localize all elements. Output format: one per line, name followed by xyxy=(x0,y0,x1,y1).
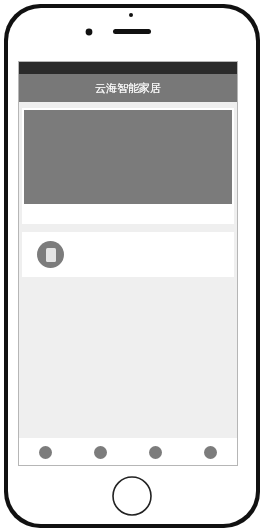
button[interactable]: Profile xyxy=(183,438,238,466)
other: Device xyxy=(37,241,64,268)
staticText: 云海智能家居 xyxy=(95,81,161,95)
button[interactable]: Device xyxy=(22,232,234,277)
button[interactable] xyxy=(22,108,234,224)
button[interactable]: Devices xyxy=(73,438,128,466)
button[interactable]: 云海智能家居 xyxy=(18,74,238,102)
button[interactable]: Scenes xyxy=(128,438,183,466)
button[interactable]: Home xyxy=(18,438,73,466)
